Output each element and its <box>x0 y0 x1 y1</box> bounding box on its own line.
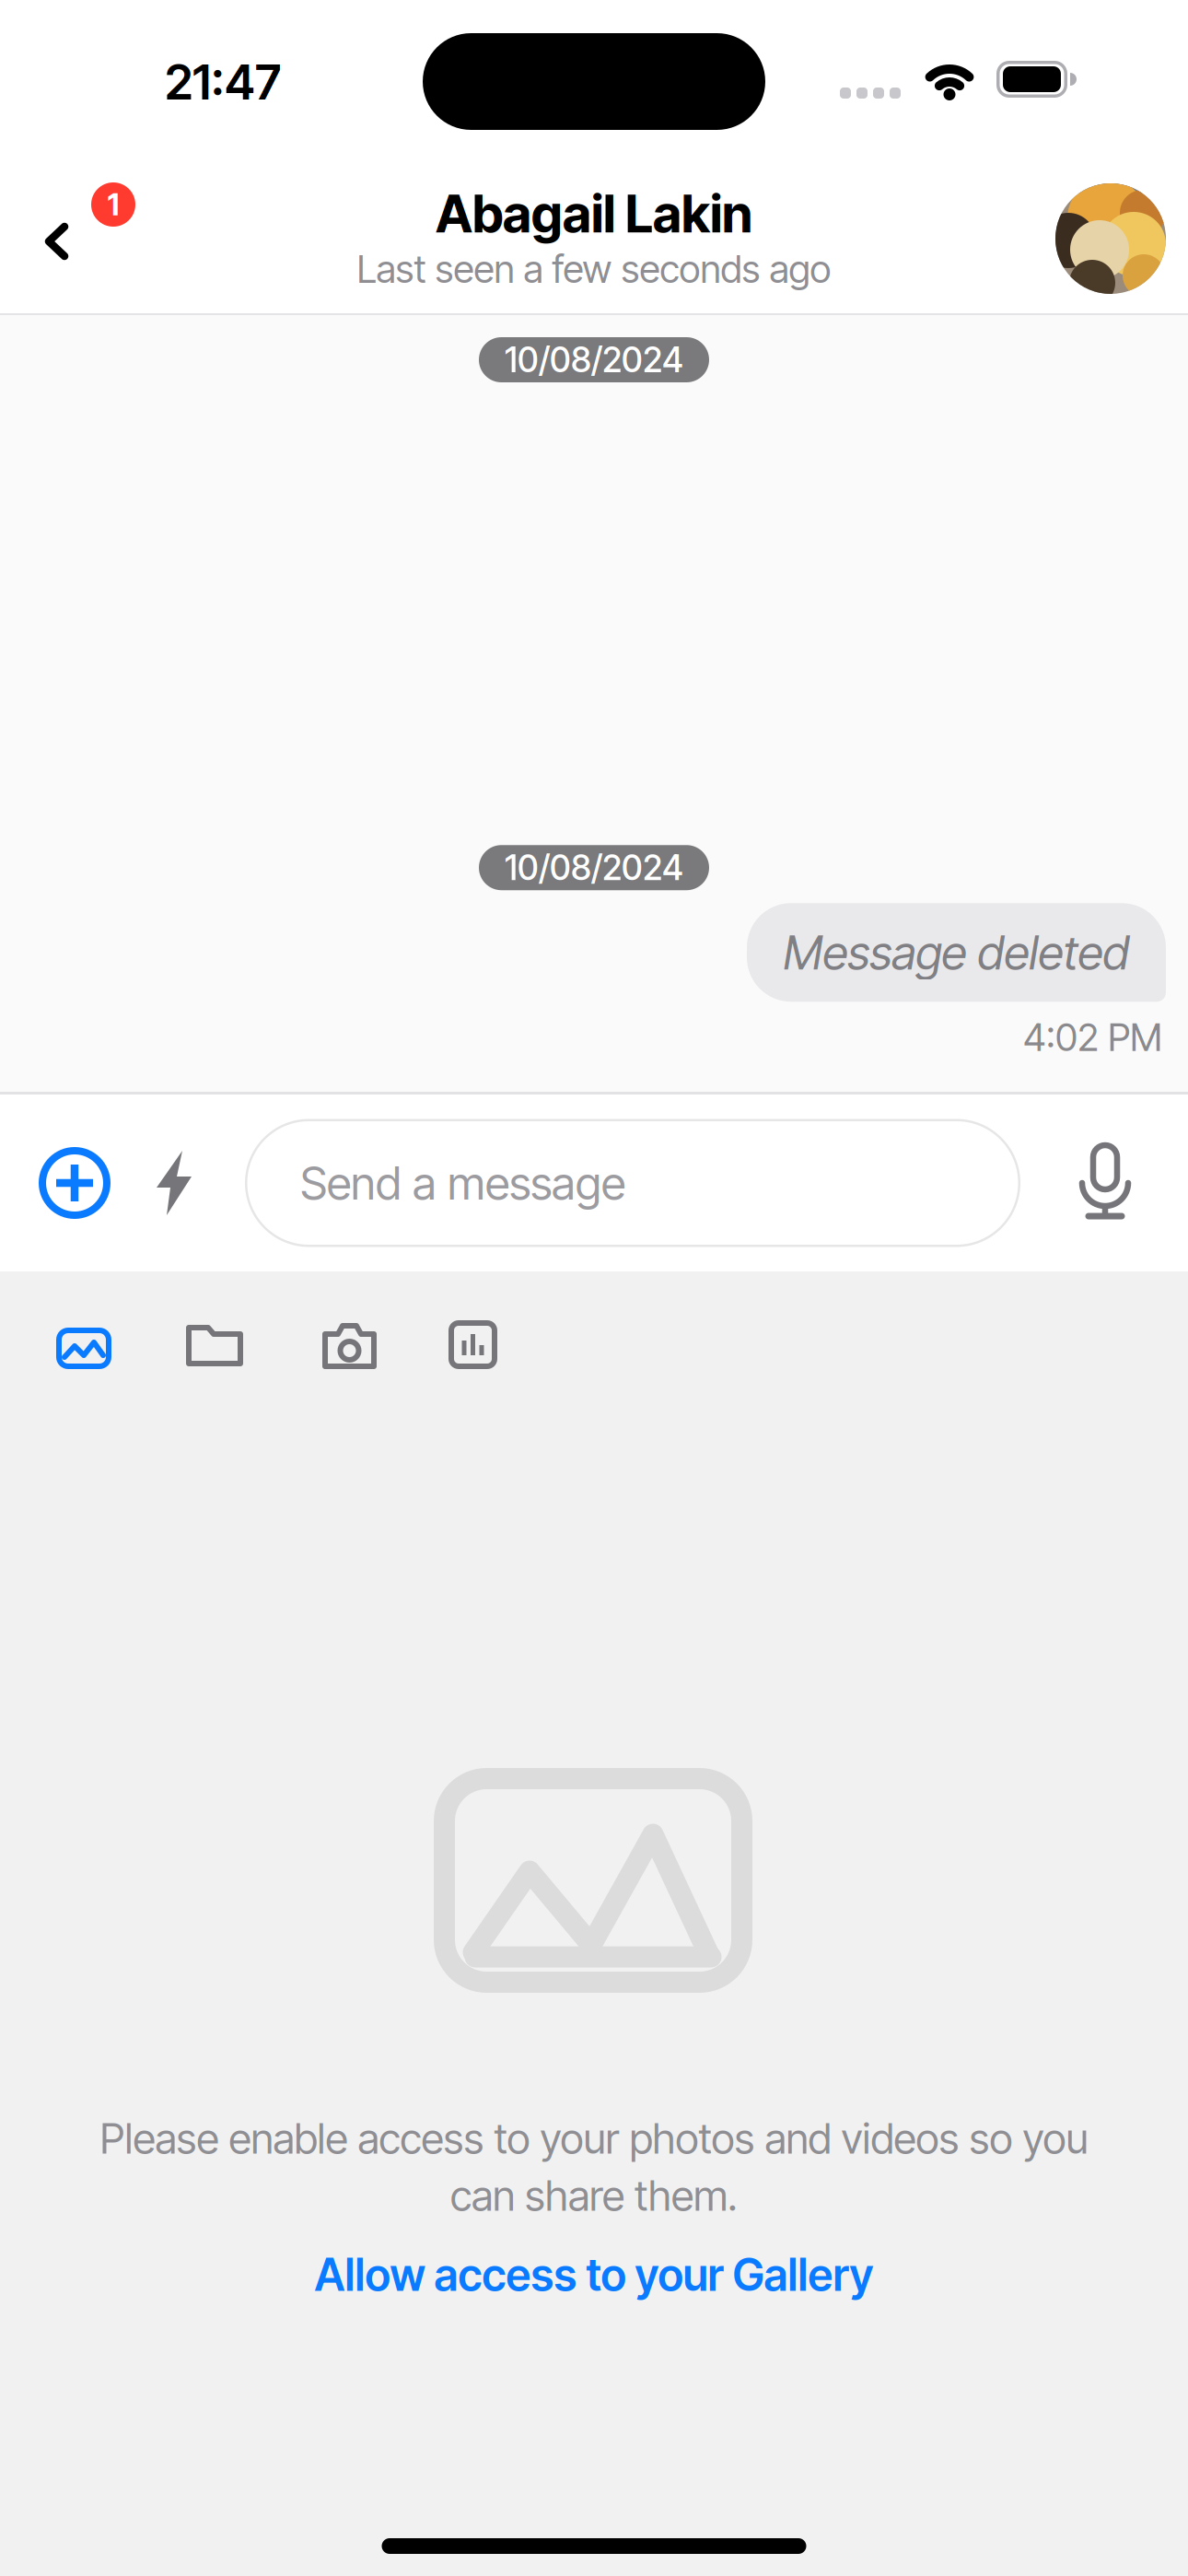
button[interactable]: Allow access to your Gallery <box>314 2249 874 2301</box>
staticText: Last seen a few seconds ago <box>357 247 831 292</box>
staticText: Allow access to your Gallery <box>314 2249 874 2301</box>
button[interactable]: Back <box>0 121 157 313</box>
staticText: Please enable access to your photos and … <box>100 2114 1088 2163</box>
staticText: Send a message <box>300 1156 625 1210</box>
button[interactable]: Record voice message <box>1081 1142 1129 1220</box>
staticText: Message deleted <box>783 925 1130 980</box>
staticText: 10/08/2024 <box>505 847 683 888</box>
button[interactable]: Quick actions <box>157 1151 193 1215</box>
staticText: can share them. <box>450 2171 738 2220</box>
staticText: Abagail Lakin <box>436 183 752 244</box>
button[interactable]: Profile photo <box>1055 183 1166 294</box>
staticText: 4:02 PM <box>1023 1015 1162 1060</box>
button[interactable]: Poll <box>448 1320 497 1369</box>
button[interactable]: Camera <box>322 1323 377 1369</box>
button[interactable]: Gallery <box>56 1328 111 1369</box>
staticText: 1 <box>107 187 119 222</box>
button[interactable]: Files <box>186 1322 243 1369</box>
staticText: 21:47 <box>165 54 281 110</box>
staticText: 10/08/2024 <box>505 340 683 380</box>
button[interactable]: Attach <box>39 1147 111 1219</box>
button[interactable]: Send a message <box>245 1119 1020 1247</box>
